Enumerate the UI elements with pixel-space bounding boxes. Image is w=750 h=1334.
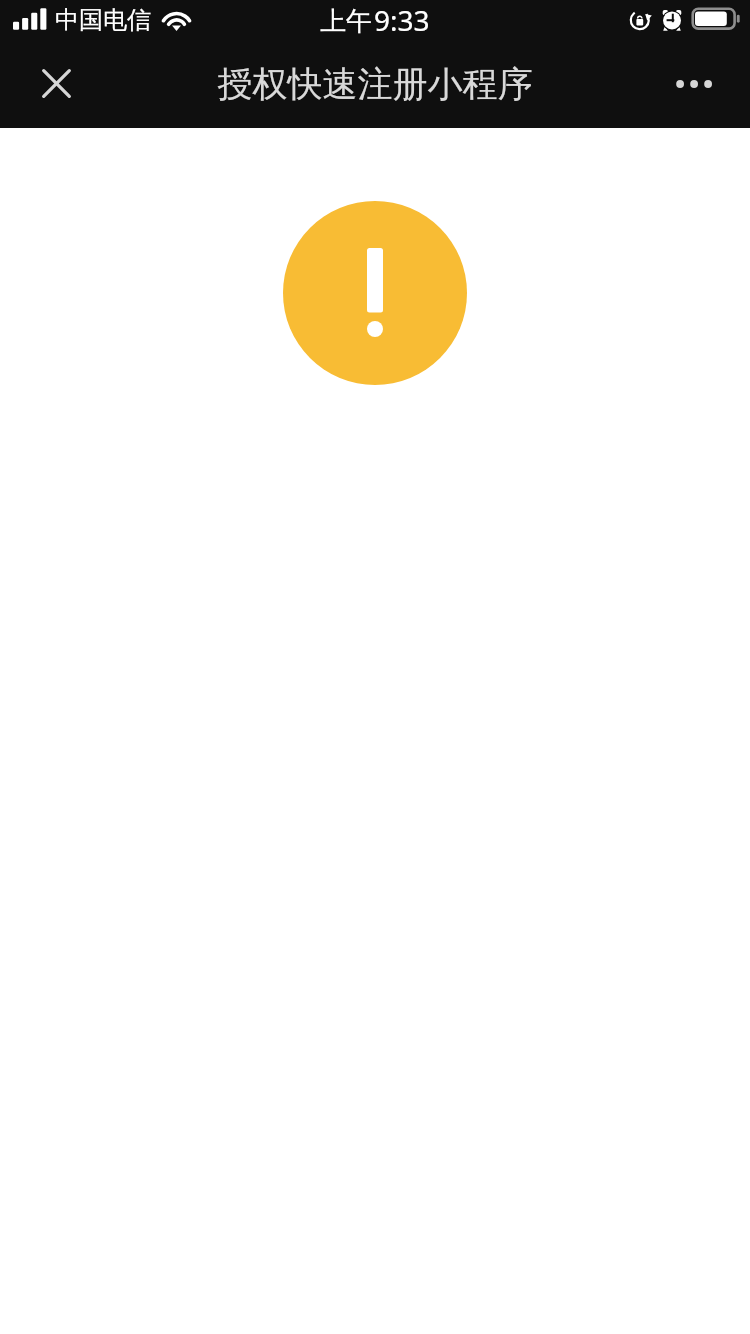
staticText: 9:33 xyxy=(374,1,430,39)
button[interactable]: More options xyxy=(669,59,719,109)
staticText: 中国电信 xyxy=(55,5,151,35)
staticText: 授权快速注册小程序 xyxy=(0,62,750,106)
staticText: 上午 xyxy=(320,5,372,38)
button[interactable]: Close xyxy=(31,58,82,109)
